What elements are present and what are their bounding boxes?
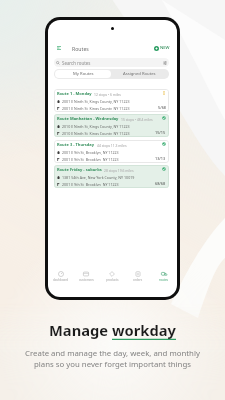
button[interactable]: Search routes (54, 58, 169, 67)
staticText: routes (159, 278, 169, 282)
staticText: 13/13 (155, 156, 166, 161)
staticText: 68/68 (155, 181, 166, 186)
staticText: 28 stops 19.6 miles (104, 168, 134, 172)
button[interactable]: customers (73, 268, 99, 284)
staticText: 15 stops • 48.4 miles (121, 117, 153, 121)
button[interactable]: NEW (154, 45, 170, 51)
staticText: orders (133, 278, 143, 282)
staticText: 15/15 (155, 130, 166, 135)
staticText: Route 3 - Thursday (57, 142, 95, 147)
staticText: customers (79, 278, 94, 282)
staticText: 2001 E 9th St, Brooklyn, NY 11223 (62, 182, 119, 186)
staticText: 2010 E Ninth St, Kings County, NY 11223 (62, 124, 130, 129)
button[interactable]: Assigned Routes (111, 70, 168, 78)
staticText: Route Manhattan - Wednesday (57, 116, 119, 121)
staticText: workday (112, 320, 176, 340)
button[interactable]: Route 1 - Monday (54, 89, 169, 112)
staticText: Manage (49, 320, 112, 340)
button[interactable]: routes (151, 268, 177, 284)
staticText: 2010 E Ninth St, Kings County, NY 11223 (62, 131, 130, 135)
staticText: 2001 E Ninth St, Kings County, NY 11223 (62, 99, 130, 104)
button[interactable]: products (99, 268, 125, 284)
staticText: NEW (160, 45, 170, 51)
button[interactable]: Route 3 - Thursday (54, 140, 169, 163)
staticText: 12 stops • 6 miles (94, 92, 121, 96)
staticText: products (106, 278, 119, 282)
staticText: My Routes (73, 71, 94, 77)
button[interactable]: Route Friday - suburbs (54, 165, 169, 188)
staticText: dashboard (53, 278, 69, 282)
staticText: 2001 E Ninth St, Kings County, NY 11223 (62, 106, 130, 110)
staticText: Assigned Routes (123, 71, 156, 77)
staticText: 1381 54th Ave, New York County, NY 10019 (62, 175, 135, 180)
staticText: Routes (72, 45, 89, 52)
staticText: 2001 E 9th St, Brooklyn, NY 11223 (62, 150, 119, 155)
staticText: Route Friday - suburbs (57, 167, 102, 172)
button[interactable]: orders (125, 268, 151, 284)
button[interactable]: My Routes (55, 70, 111, 78)
staticText: 2001 E 9th St, Brooklyn, NY 11223 (62, 157, 119, 161)
staticText: 5/68 (158, 105, 166, 110)
button[interactable]: dashboard (48, 268, 73, 284)
staticText: Route 1 - Monday (57, 91, 92, 96)
button[interactable]: Route Manhattan - Wednesday (54, 114, 169, 137)
other: Filter (163, 61, 167, 65)
staticText: Search routes (62, 60, 91, 66)
staticText: 44 stops 11.3 miles (97, 143, 127, 147)
button[interactable]: Menu (57, 46, 61, 50)
staticText: Create and manage the day, week, and mon… (25, 348, 200, 370)
